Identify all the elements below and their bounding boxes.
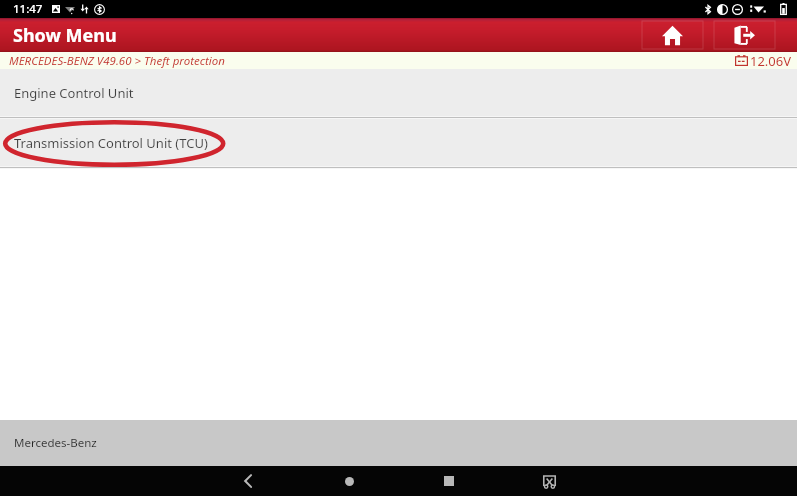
staticText: Engine Control Unit — [14, 84, 134, 102]
button[interactable]: Recent apps — [426, 466, 472, 496]
button[interactable]: Engine Control Unit — [0, 69, 797, 116]
button[interactable]: Home — [642, 21, 703, 49]
button[interactable]: Transmission Control Unit (TCU) — [0, 119, 797, 166]
button[interactable]: Screenshot — [526, 466, 572, 496]
staticText: 11:47 — [13, 1, 43, 17]
staticText: Transmission Control Unit (TCU) — [14, 134, 208, 152]
button[interactable]: Back — [225, 466, 271, 496]
staticText: Mercedes-Benz — [14, 435, 97, 451]
staticText: 12.06V — [750, 52, 792, 69]
button[interactable]: Exit — [714, 21, 775, 49]
staticText: Show Menu — [13, 23, 117, 48]
staticText: MERCEDES-BENZ V49.60 > Theft protection — [9, 53, 225, 69]
button[interactable]: Home — [326, 466, 372, 496]
